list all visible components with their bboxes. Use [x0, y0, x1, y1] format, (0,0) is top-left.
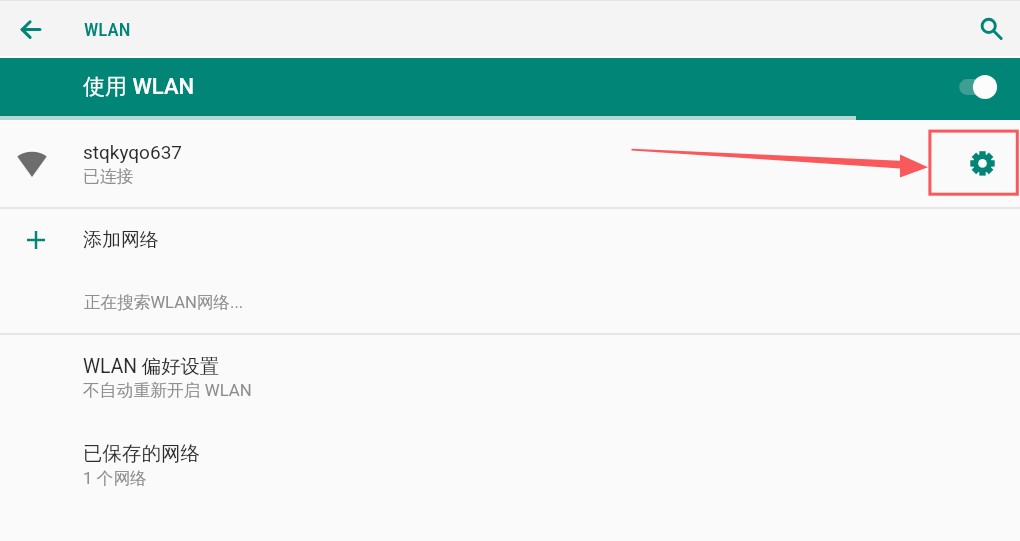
staticText: 使用 WLAN — [83, 73, 195, 101]
button[interactable]: Back — [9, 7, 53, 51]
button[interactable]: stqkyqo637 — [0, 120, 1020, 207]
button[interactable]: 使用 WLAN — [0, 58, 1020, 116]
staticText: 正在搜索WLAN网络... — [84, 292, 244, 313]
button[interactable]: WLAN 偏好设置 — [0, 334, 1020, 422]
staticText: 不自动重新开启 WLAN — [83, 380, 252, 401]
staticText: 1 个网络 — [83, 468, 147, 489]
staticText: WLAN — [84, 18, 131, 40]
staticText: stqkyqo637 — [83, 141, 182, 163]
staticText: 已连接 — [83, 166, 134, 187]
button[interactable]: 添加网络 — [0, 208, 1020, 271]
staticText: 已保存的网络 — [83, 441, 200, 466]
staticText: WLAN 偏好设置 — [83, 354, 220, 378]
button[interactable]: Wi-Fi toggle — [952, 72, 1008, 102]
button[interactable]: Search — [966, 4, 1011, 49]
staticText: 添加网络 — [83, 228, 159, 252]
button[interactable]: Network settings — [950, 131, 1016, 195]
button[interactable]: 已保存的网络 — [0, 422, 1020, 510]
